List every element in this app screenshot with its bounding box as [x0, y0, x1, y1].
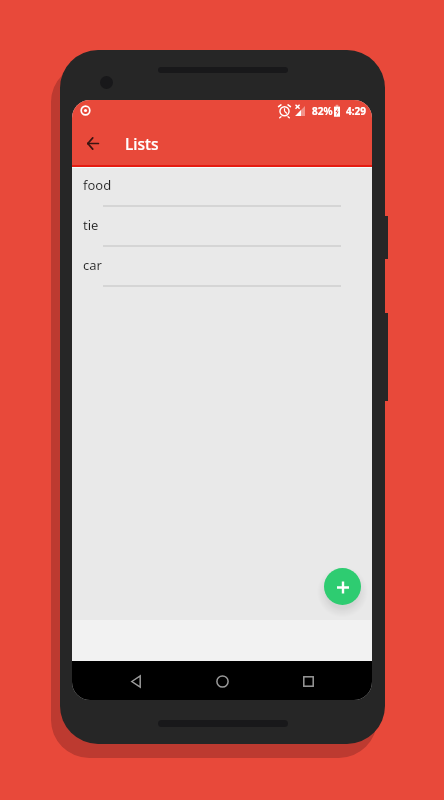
button[interactable]: Home — [206, 665, 238, 697]
button[interactable]: car — [72, 248, 372, 288]
staticText: 82% — [312, 104, 333, 118]
staticText: 4:29 — [346, 104, 366, 118]
staticText: tie — [83, 216, 99, 234]
staticText: car — [83, 256, 102, 274]
staticText: Lists — [125, 133, 159, 154]
button[interactable]: Recent apps — [292, 665, 324, 697]
button[interactable]: tie — [72, 208, 372, 248]
button[interactable]: Back — [120, 665, 152, 697]
button[interactable]: food — [72, 168, 372, 208]
button[interactable]: Navigate up — [75, 125, 111, 161]
staticText: food — [83, 176, 112, 194]
button[interactable]: Add list — [324, 568, 361, 605]
